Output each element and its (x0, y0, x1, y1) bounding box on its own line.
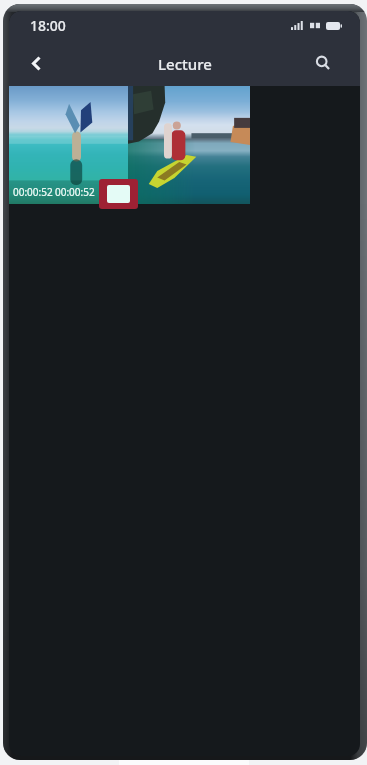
staticText: Lecture (158, 54, 212, 74)
button[interactable]: 00:00:52 (9, 86, 128, 204)
button[interactable] (128, 86, 250, 204)
staticText: 18:00 (30, 16, 66, 35)
button[interactable]: Selected clip (107, 185, 130, 203)
staticText: 00:00:52 (13, 185, 53, 199)
button[interactable]: Back (19, 46, 53, 80)
button[interactable]: Search (308, 48, 338, 78)
staticText: 00:00:52 (55, 185, 95, 199)
